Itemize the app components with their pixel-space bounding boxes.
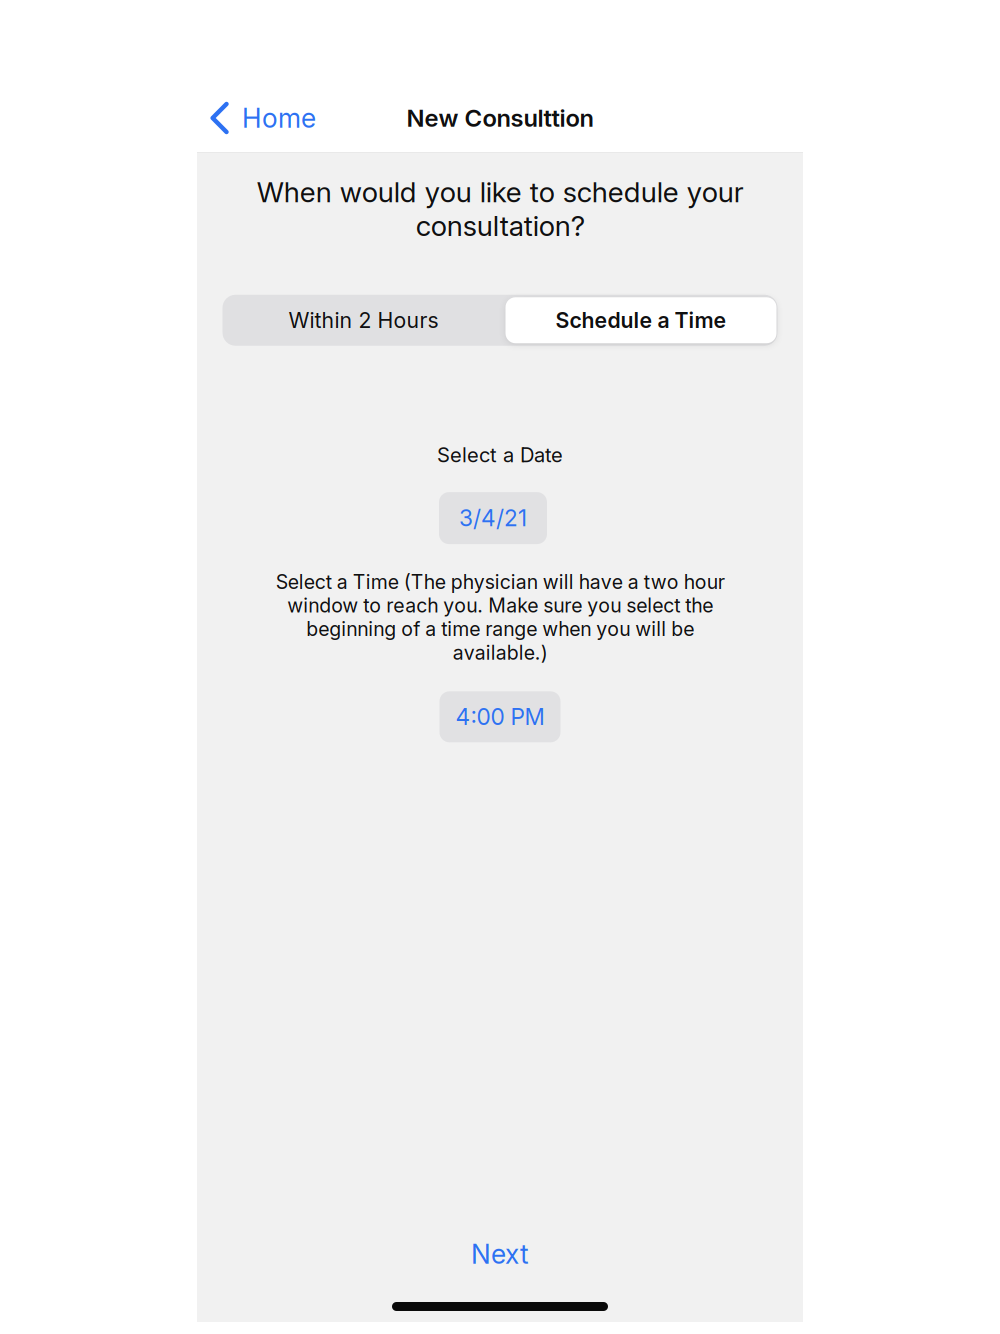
staticText: Select a Time (The physician will have a… xyxy=(275,570,724,664)
staticText: When would you like to schedule your con… xyxy=(256,175,743,243)
button[interactable]: Schedule a Time xyxy=(504,295,777,346)
staticText: Next xyxy=(471,1238,529,1270)
button[interactable]: Next xyxy=(471,1234,529,1274)
staticText: 3/4/21 xyxy=(459,504,527,532)
button[interactable]: Select a date, 3/4/21 xyxy=(439,492,547,544)
staticText: Schedule a Time xyxy=(555,307,726,333)
button[interactable]: Within 2 Hours xyxy=(222,295,504,346)
button[interactable]: Back to Home xyxy=(197,96,326,140)
button[interactable]: Select a time, 4:00 PM xyxy=(439,691,560,742)
staticText: 4:00 PM xyxy=(455,703,544,730)
staticText: Within 2 Hours xyxy=(288,307,438,333)
staticText: Select a Date xyxy=(437,443,563,467)
staticText: New Consulttion xyxy=(406,103,593,132)
staticText: Home xyxy=(242,102,316,134)
